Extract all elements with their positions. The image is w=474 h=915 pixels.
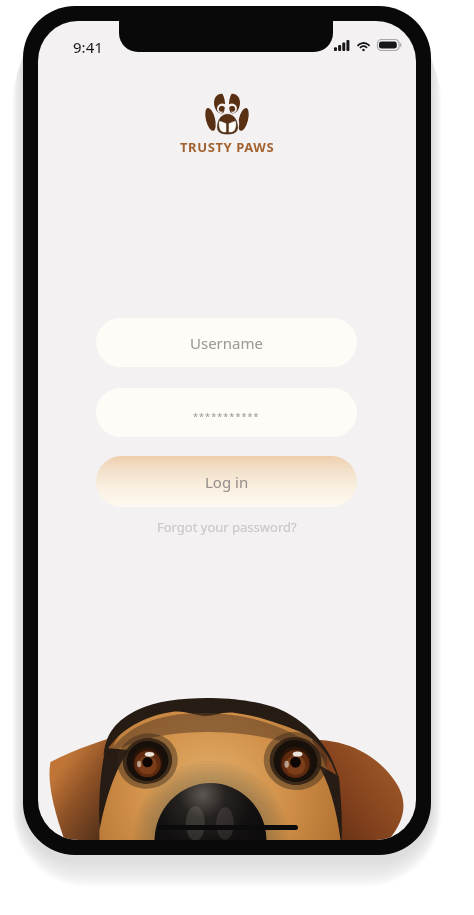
staticText: Username (190, 333, 263, 353)
button[interactable]: Log in (96, 456, 357, 507)
staticText: Forgot your password? (157, 518, 297, 536)
button[interactable]: Forgot your password? (157, 518, 297, 536)
button[interactable]: *********** (96, 388, 357, 437)
staticText: TRUSTY PAWS (180, 138, 275, 156)
staticText: Log in (205, 472, 249, 492)
staticText: *********** (193, 410, 260, 422)
staticText: 9:41 (73, 37, 103, 57)
button[interactable]: Username (96, 318, 357, 367)
